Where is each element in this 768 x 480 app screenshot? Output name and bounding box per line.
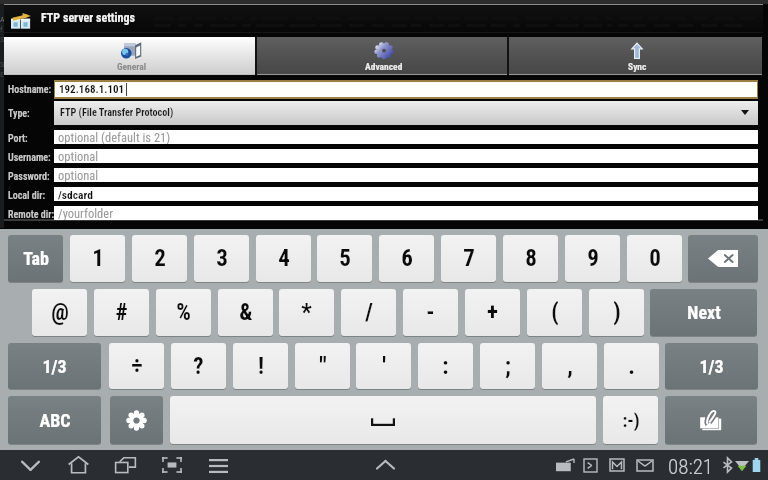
button[interactable]: 6 [379,235,434,282]
staticText: . [628,353,635,380]
staticText: Tab [23,248,49,269]
button[interactable]: Home [56,450,100,480]
staticText: & [239,299,253,326]
staticText: + [487,299,498,326]
button[interactable]: ! [233,343,288,389]
staticText: ABC [39,410,71,431]
button[interactable]: 192.168.1.101 [55,82,757,97]
staticText: 4 [278,245,290,272]
button[interactable]: Next [650,289,757,336]
staticText: FTP server settings [41,11,135,25]
staticText: 0 [649,245,661,272]
staticText: @ [51,299,69,326]
button[interactable]: /sdcard [54,187,758,201]
staticText: S [0,60,5,69]
button[interactable]: ? [171,343,226,389]
button[interactable]: optional [54,168,758,182]
button[interactable]: FTP (File Transfer Protocol) [54,101,758,125]
button[interactable]: Backspace [688,235,758,282]
staticText: :-) [622,410,640,431]
button[interactable]: optional [54,149,758,163]
staticText: 9 [587,245,599,272]
button[interactable]: * [279,289,334,336]
button[interactable]: & [218,289,273,336]
button[interactable]: : [418,343,473,389]
staticText: Sync [628,61,647,72]
staticText: 192.168.1.101 [59,83,125,96]
button[interactable]: 4 [256,235,311,282]
button[interactable]: ) [589,289,644,336]
staticText: A [0,15,5,24]
button[interactable]: 1/3 [665,343,758,389]
button[interactable]: Recents [103,450,147,480]
staticText: FTP (File Transfer Protocol) [60,107,174,119]
staticText: Type: [8,108,30,120]
staticText: optional [58,149,99,163]
staticText: # [115,299,128,326]
button[interactable]: General [4,37,256,75]
button[interactable]: ; [480,343,535,389]
staticText: 8 [525,245,537,272]
button[interactable]: 1 [70,235,125,282]
staticText: E [0,70,4,79]
staticText: 6 [401,245,413,272]
button[interactable]: % [156,289,211,336]
button[interactable]: Attach [665,396,757,444]
button[interactable]: 8 [503,235,558,282]
button[interactable]: 1/3 [8,343,101,389]
button[interactable]: Menu [196,450,240,480]
staticText: ! [258,353,264,380]
button[interactable]: Screenshot [150,450,194,480]
staticText: % [176,299,191,326]
button[interactable]: - [403,289,458,336]
button[interactable]: Tab [8,235,63,282]
button[interactable]: /yourfolder [54,206,758,220]
button[interactable]: optional (default is 21) [54,130,758,144]
staticText: Advanced [365,61,403,72]
staticText: Password: [8,171,50,183]
button[interactable]: ( [527,289,582,336]
button[interactable]: :-) [603,396,658,444]
button[interactable]: # [94,289,149,336]
staticText: ? [193,353,204,380]
staticText: 1 [92,245,104,272]
staticText: ; [505,353,511,380]
button[interactable]: 2 [132,235,187,282]
staticText: - [426,299,435,326]
button[interactable]: Sync [508,37,762,75]
staticText: ' [382,353,386,380]
button[interactable]: Hide keyboard [8,450,52,480]
button[interactable]: 5 [317,235,372,282]
staticText: 1/3 [699,356,724,377]
button[interactable]: . [604,343,659,389]
button[interactable]: , [542,343,597,389]
button[interactable]: @ [32,289,87,336]
button[interactable]: 7 [441,235,496,282]
staticText: ( [551,299,559,326]
button[interactable]: Keyboard settings [110,396,163,444]
staticText: Local dir: [8,190,46,202]
staticText: f [0,25,3,34]
button[interactable]: ' [356,343,411,389]
staticText: /sdcard [58,188,93,201]
button[interactable]: ABC [8,396,101,444]
button[interactable]: 9 [565,235,620,282]
button[interactable]: / [341,289,396,336]
button[interactable]: Expand [363,450,407,480]
button[interactable]: Advanced [256,37,508,75]
staticText: ÷ [131,353,143,380]
button[interactable]: + [465,289,520,336]
button[interactable]: Space [170,396,596,444]
staticText: * [301,299,312,326]
staticText: 2 [154,245,166,272]
staticText: Next [687,302,721,323]
staticText: optional (default is 21) [58,130,171,144]
staticText: Username: [8,152,51,164]
staticText: 08:21 [668,455,714,480]
button[interactable]: 0 [627,235,682,282]
staticText: 3 [216,245,228,272]
button[interactable]: " [295,343,350,389]
staticText: Hostname: [8,84,52,96]
button[interactable]: ÷ [109,343,164,389]
button[interactable]: 3 [194,235,249,282]
